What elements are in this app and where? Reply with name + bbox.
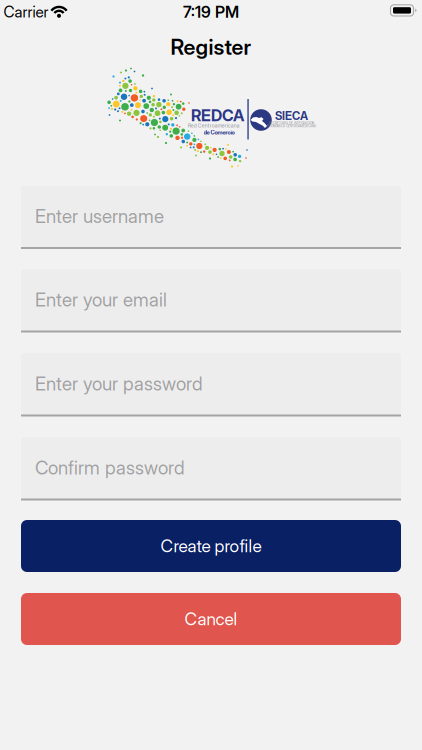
staticText: Carrier: [3, 3, 48, 21]
staticText: ECONOMICA CENTROAMERICANA: [267, 124, 316, 128]
staticText: Confirm password: [35, 456, 185, 479]
button[interactable]: Enter your email: [21, 269, 401, 332]
staticText: Red Centroamericana: [188, 123, 240, 129]
button[interactable]: Create profile: [21, 520, 401, 572]
staticText: Cancel: [184, 608, 237, 629]
staticText: REDCA: [191, 106, 244, 125]
staticText: 7:19 PM: [183, 2, 239, 22]
button[interactable]: Enter your password: [21, 353, 401, 416]
staticText: Enter your email: [35, 288, 167, 311]
button[interactable]: Cancel: [21, 593, 401, 645]
staticText: Enter your password: [35, 372, 203, 395]
staticText: SIECA: [275, 109, 308, 123]
button[interactable]: Confirm password: [21, 437, 401, 500]
button[interactable]: Enter username: [21, 185, 401, 249]
staticText: Create profile: [160, 535, 261, 556]
staticText: Register: [170, 34, 251, 60]
staticText: SECRETARIA DE INTEGRACION: [269, 121, 314, 125]
staticText: Enter username: [35, 205, 164, 228]
staticText: de Comercio: [203, 129, 234, 136]
